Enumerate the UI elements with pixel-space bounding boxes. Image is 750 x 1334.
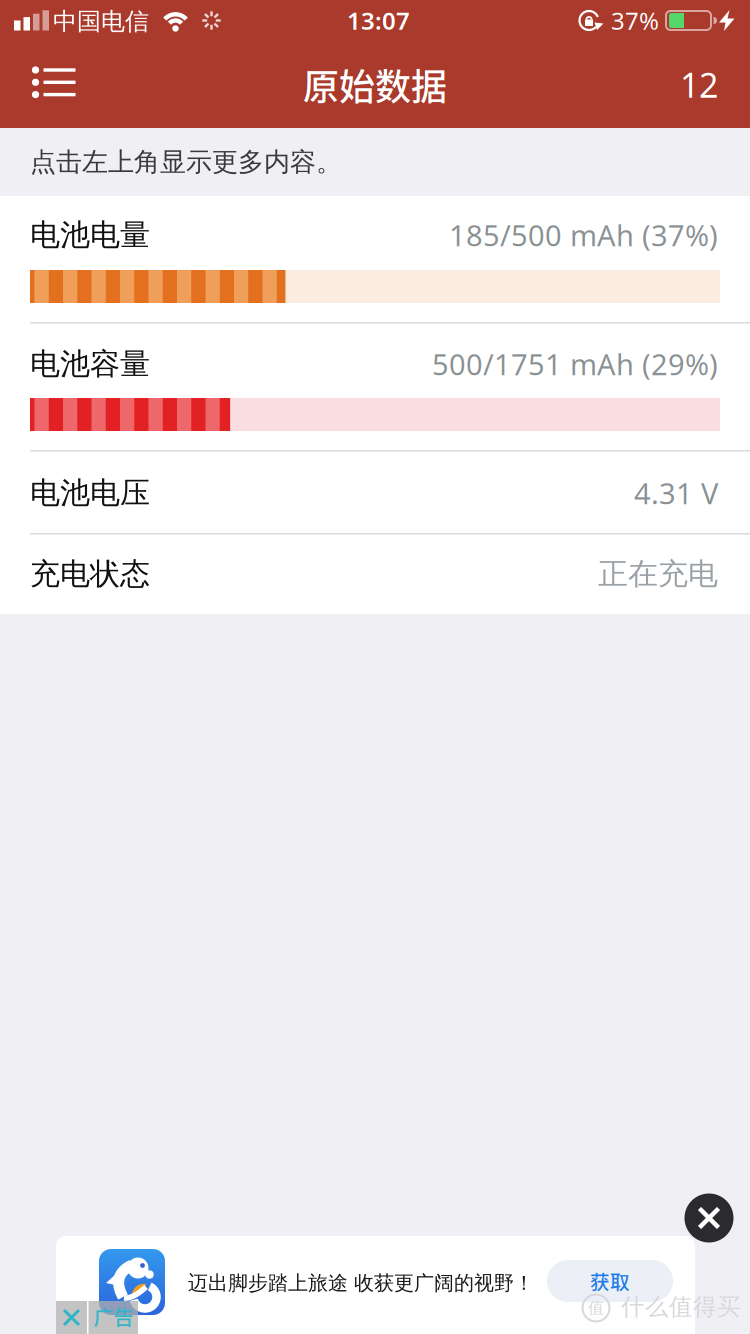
staticText: 电池电量 [30,216,150,254]
button[interactable]: 关闭广告 [684,1193,733,1242]
staticText: 500/1751 mAh (29%) [432,344,718,384]
staticText: 正在充电 [598,555,718,593]
staticText: 电池容量 [30,345,150,383]
button[interactable]: 获取 [547,1260,673,1302]
staticText: 37% [611,4,659,37]
staticText: 迈出脚步踏上旅途 收获更广阔的视野！ [188,1270,534,1296]
button[interactable]: 12 [638,57,718,111]
staticText: 12 [680,61,718,108]
staticText: 广告 [93,1302,133,1331]
button[interactable]: 广告 [56,1301,138,1334]
staticText: 4.31 V [634,473,718,513]
staticText: 获取 [590,1267,630,1295]
staticText: 点击左上角显示更多内容。 [30,146,342,178]
staticText: 值 [588,1298,604,1318]
staticText: 什么值得买 [621,1292,741,1322]
button[interactable]: 迈出脚步踏上旅途 收获更广阔的视野！ [56,1236,695,1334]
staticText: 充电状态 [30,555,150,593]
staticText: 中国电信 [53,6,149,37]
staticText: 185/500 mAh (37%) [449,215,718,255]
staticText: 原始数据 [303,58,447,110]
staticText: 电池电压 [30,474,150,512]
staticText: 13:07 [347,4,410,37]
button[interactable]: 菜单 [20,57,92,111]
